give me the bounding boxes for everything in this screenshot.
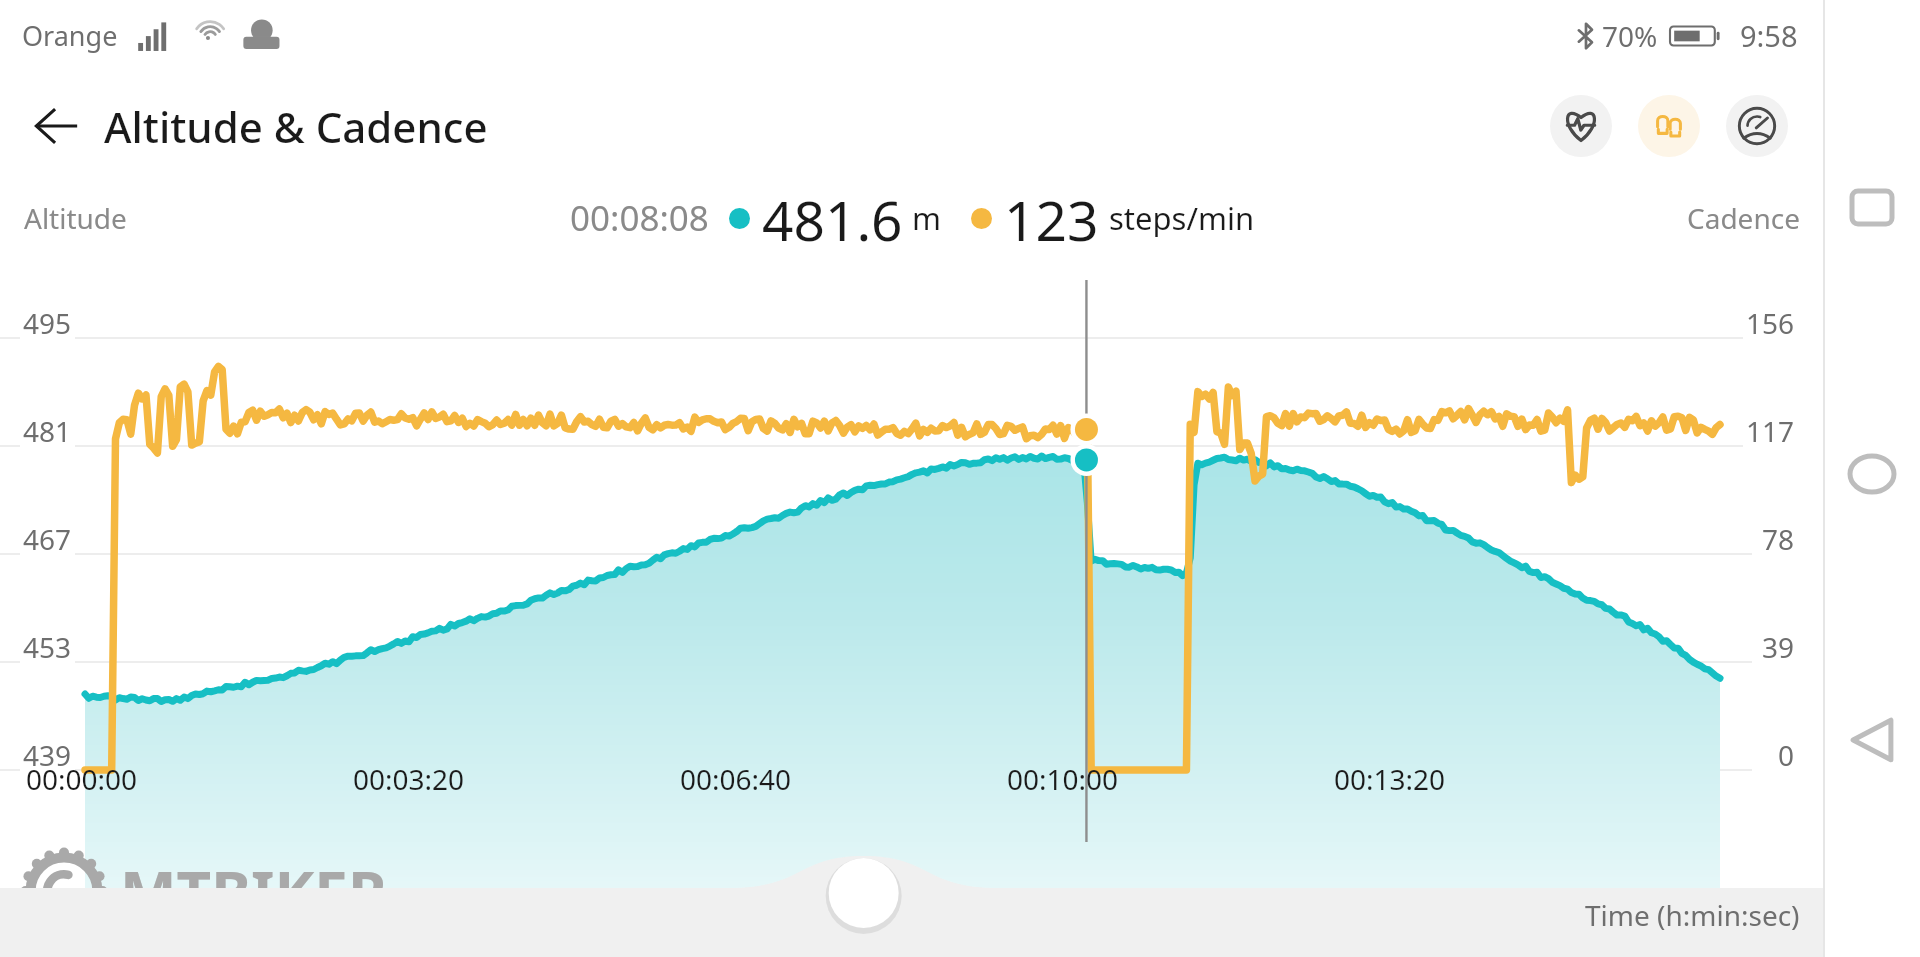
staticText: 70% [1602, 17, 1658, 55]
staticText: Time (h:min:sec) [1585, 896, 1800, 934]
staticText: 00:08:08 [570, 194, 709, 242]
staticText: 0 [1778, 736, 1795, 774]
button[interactable]: Heart rate [1550, 95, 1612, 157]
staticText: 467 [23, 520, 72, 558]
button[interactable]: Cadence [1638, 95, 1700, 157]
staticText: 9:58 [1740, 16, 1798, 55]
staticText: m [912, 197, 941, 239]
staticText: 481.6 [762, 182, 903, 254]
staticText: 495 [23, 304, 72, 342]
button[interactable]: Recents [1835, 170, 1909, 244]
staticText: Cadence [1687, 199, 1800, 237]
staticText: 00:06:40 [680, 760, 792, 798]
staticText: 117 [1746, 412, 1795, 450]
staticText: 123 [1004, 182, 1099, 254]
staticText: 39 [1762, 628, 1795, 666]
staticText: steps/min [1109, 197, 1255, 239]
button[interactable]: Home [1835, 437, 1909, 511]
staticText: 78 [1762, 520, 1795, 558]
button[interactable]: Back [24, 93, 90, 159]
button[interactable]: Speed [1726, 95, 1788, 157]
button[interactable]: Back [1835, 703, 1909, 777]
staticText: 00:00:00 [26, 760, 138, 798]
staticText: 00:13:20 [1334, 760, 1446, 798]
staticText: 439 [23, 736, 72, 774]
staticText: 156 [1746, 304, 1795, 342]
staticText: 00:10:00 [1007, 760, 1119, 798]
staticText: Orange [22, 17, 118, 54]
staticText: 453 [23, 628, 72, 666]
staticText: Altitude & Cadence [104, 98, 488, 155]
staticText: 00:03:20 [353, 760, 465, 798]
staticText: 481 [23, 412, 72, 450]
staticText: Altitude [24, 199, 127, 237]
staticText: MTBIKER [120, 850, 388, 932]
